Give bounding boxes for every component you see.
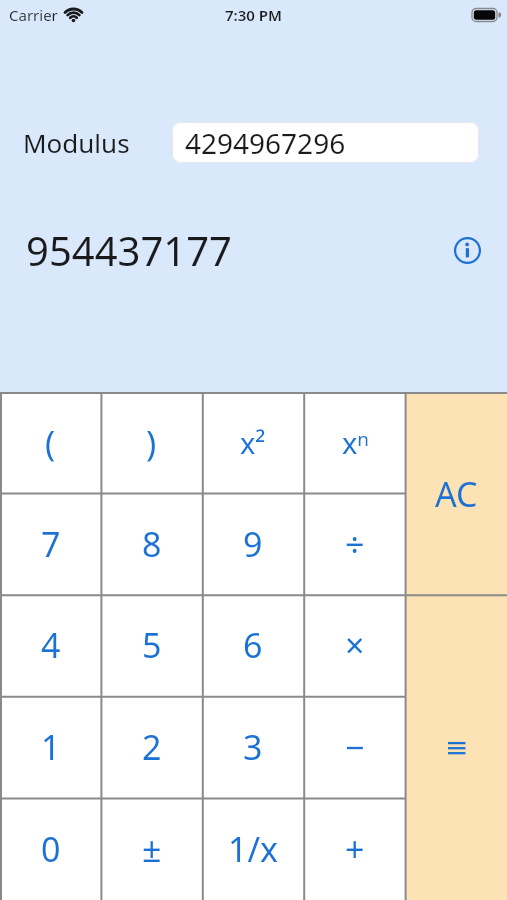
- staticText: Modulus: [23, 125, 130, 160]
- staticText: 6: [243, 622, 263, 668]
- button[interactable]: 2: [101, 696, 202, 798]
- staticText: ≡: [445, 731, 469, 764]
- staticText: 7:30 PM: [225, 5, 282, 25]
- staticText: AC: [435, 471, 478, 517]
- button[interactable]: 9: [202, 493, 304, 594]
- button[interactable]: x²: [202, 392, 304, 493]
- staticText: 9: [243, 521, 263, 567]
- button[interactable]: 4294967296: [172, 122, 479, 163]
- button[interactable]: +: [304, 798, 406, 900]
- staticText: xⁿ: [342, 423, 369, 462]
- button[interactable]: 0: [0, 798, 101, 900]
- staticText: ×: [345, 622, 365, 668]
- staticText: 3: [243, 724, 263, 770]
- staticText: 1: [41, 724, 61, 770]
- button[interactable]: ≡: [406, 595, 507, 900]
- staticText: 4: [41, 622, 61, 668]
- staticText: Carrier: [9, 5, 58, 25]
- staticText: (: [45, 420, 56, 466]
- button[interactable]: (: [0, 392, 101, 493]
- button[interactable]: 6: [202, 594, 304, 696]
- staticText: 5: [142, 622, 162, 668]
- button[interactable]: 8: [101, 493, 202, 594]
- staticText: +: [345, 826, 365, 872]
- button[interactable]: AC: [406, 392, 507, 595]
- button[interactable]: ): [101, 392, 202, 493]
- staticText: x²: [240, 423, 266, 462]
- button[interactable]: ±: [101, 798, 202, 900]
- staticText: 2: [142, 724, 162, 770]
- button[interactable]: 1/x: [202, 798, 304, 900]
- staticText: 1/x: [228, 826, 279, 872]
- staticText: 0: [41, 826, 61, 872]
- button[interactable]: 4: [0, 594, 101, 696]
- button[interactable]: 5: [101, 594, 202, 696]
- staticText: ÷: [345, 521, 365, 567]
- button[interactable]: ×: [304, 594, 406, 696]
- staticText: ±: [142, 826, 162, 872]
- staticText: 954437177: [26, 223, 232, 277]
- button[interactable]: 3: [202, 696, 304, 798]
- staticText: 8: [142, 521, 162, 567]
- button[interactable]: 7: [0, 493, 101, 594]
- staticText: 4294967296: [185, 124, 346, 162]
- staticText: −: [345, 724, 365, 770]
- button[interactable]: [454, 237, 481, 264]
- button[interactable]: 1: [0, 696, 101, 798]
- button[interactable]: xⁿ: [304, 392, 406, 493]
- button[interactable]: ÷: [304, 493, 406, 594]
- button[interactable]: −: [304, 696, 406, 798]
- staticText: ): [146, 420, 157, 466]
- staticText: 7: [41, 521, 61, 567]
